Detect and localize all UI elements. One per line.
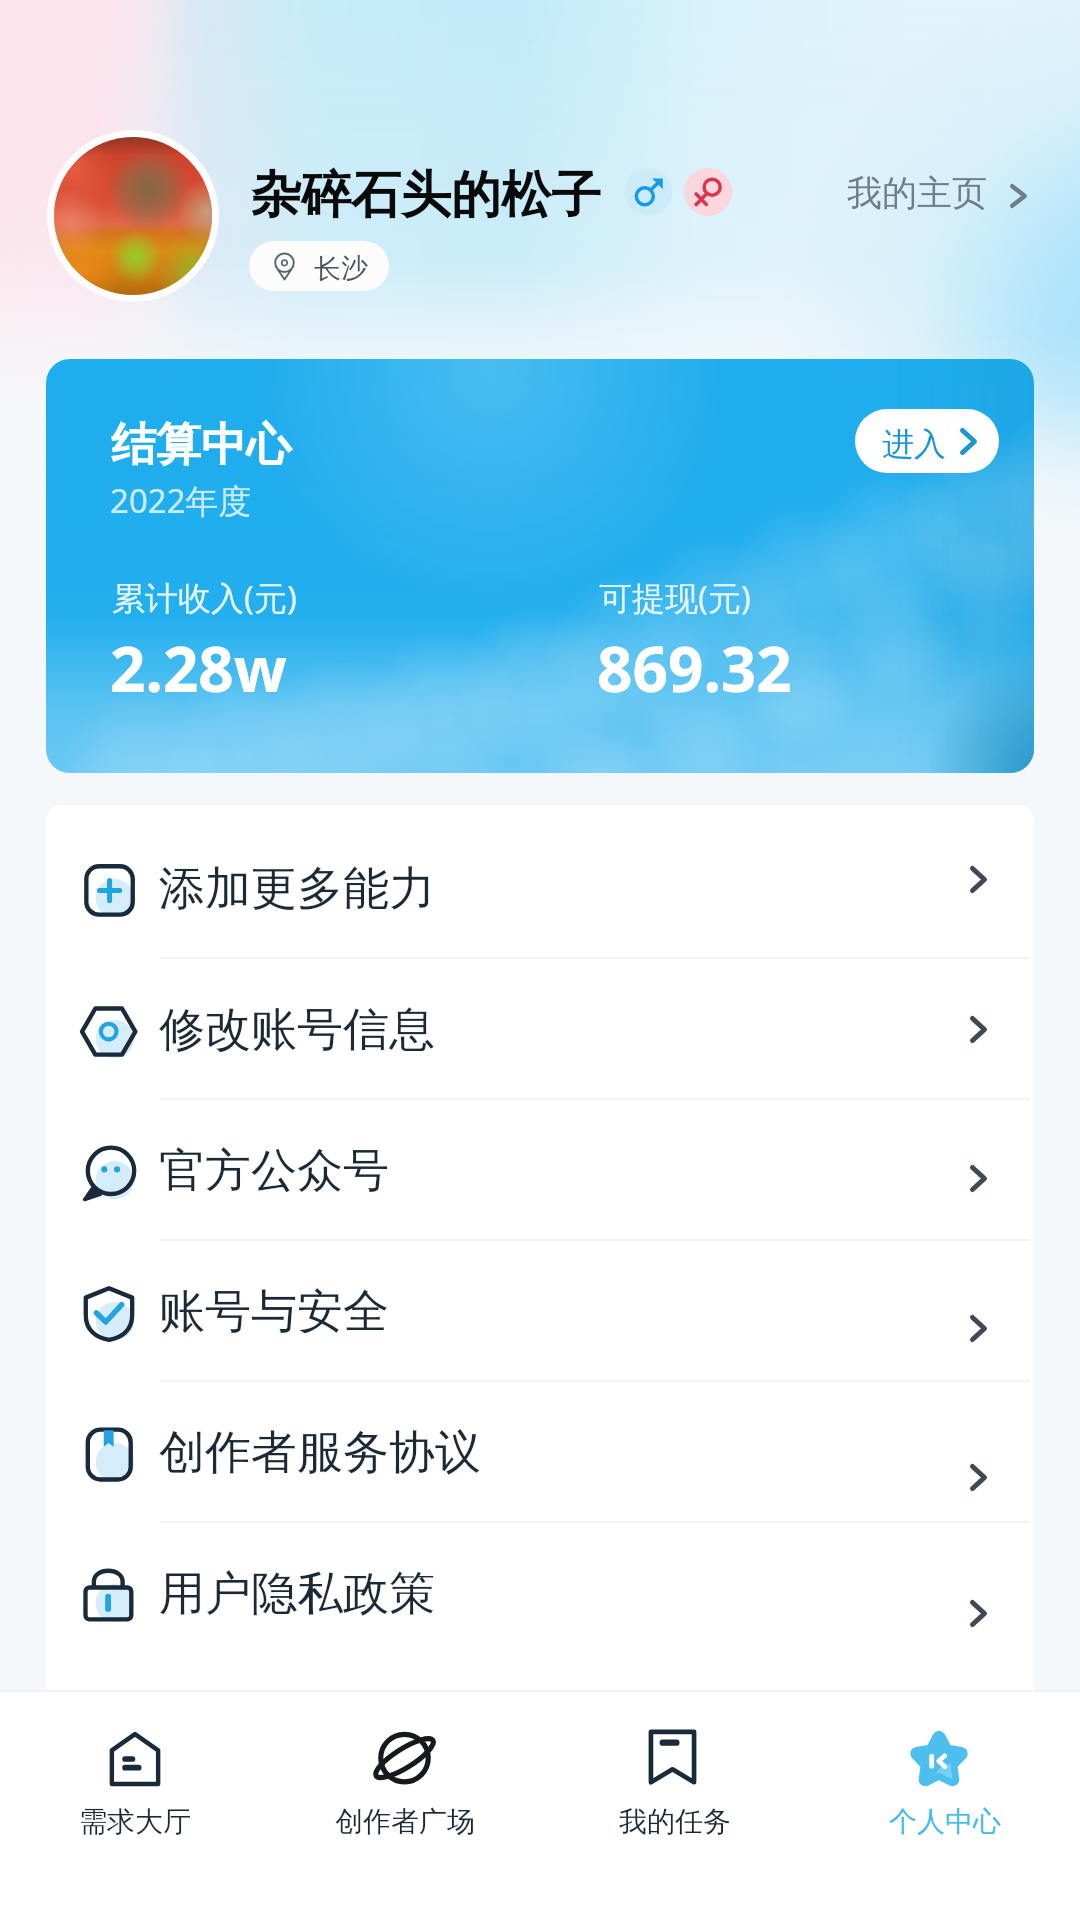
button[interactable]: 用户隐私政策 bbox=[46, 1522, 1034, 1663]
button[interactable]: Female bbox=[684, 168, 732, 216]
staticText: 个人中心 bbox=[889, 1804, 1001, 1839]
button[interactable]: 官方公众号 bbox=[46, 1099, 1034, 1240]
staticText: 进入 bbox=[882, 424, 946, 464]
staticText: 添加更多能力 bbox=[159, 860, 435, 918]
staticText: 创作者广场 bbox=[335, 1804, 475, 1839]
staticText: 我的任务 bbox=[619, 1804, 731, 1839]
button[interactable]: Profile photo bbox=[47, 130, 219, 302]
button[interactable]: 创作者广场 bbox=[270, 1692, 540, 1920]
button[interactable]: 需求大厅 bbox=[0, 1692, 270, 1920]
button[interactable]: 修改账号信息 bbox=[46, 958, 1034, 1099]
staticText: 869.32 bbox=[597, 626, 792, 710]
staticText: 可提现(元) bbox=[599, 575, 751, 620]
staticText: 2.28w bbox=[110, 626, 287, 710]
staticText: 账号与安全 bbox=[159, 1283, 389, 1341]
staticText: 我的主页 bbox=[847, 171, 987, 215]
button[interactable]: 我的任务 bbox=[540, 1692, 810, 1920]
button[interactable]: 结算中心 bbox=[46, 359, 1034, 773]
button[interactable]: 个人中心 bbox=[810, 1692, 1080, 1920]
button[interactable]: 创作者服务协议 bbox=[46, 1381, 1034, 1522]
button[interactable]: 长沙 bbox=[249, 241, 389, 291]
button[interactable]: 我的主页 bbox=[838, 160, 1038, 224]
button[interactable]: Male bbox=[624, 168, 672, 216]
button[interactable]: 进入 bbox=[855, 409, 999, 473]
staticText: 长沙 bbox=[314, 252, 368, 286]
staticText: 创作者服务协议 bbox=[159, 1424, 481, 1482]
staticText: 修改账号信息 bbox=[159, 1001, 435, 1059]
button[interactable]: 账号与安全 bbox=[46, 1240, 1034, 1381]
staticText: 用户隐私政策 bbox=[159, 1565, 435, 1623]
staticText: 杂碎石头的松子 bbox=[251, 164, 601, 227]
staticText: 官方公众号 bbox=[159, 1142, 389, 1200]
staticText: 结算中心 bbox=[111, 417, 291, 474]
staticText: 累计收入(元) bbox=[112, 575, 297, 620]
staticText: 2022年度 bbox=[110, 478, 252, 523]
staticText: 需求大厅 bbox=[79, 1804, 191, 1839]
button[interactable]: 添加更多能力 bbox=[46, 817, 1034, 958]
